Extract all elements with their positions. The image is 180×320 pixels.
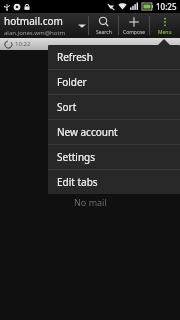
staticText: Refresh	[57, 50, 93, 64]
staticText: Search	[96, 29, 112, 36]
staticText: alan.jones.wm@hotm	[4, 29, 66, 37]
button[interactable]: Sort	[48, 95, 180, 119]
staticText: 10:22	[15, 40, 31, 48]
staticText: New account	[57, 125, 118, 139]
staticText: No mail	[74, 196, 107, 208]
staticText: Folder	[57, 75, 87, 89]
button[interactable]: New account	[48, 120, 180, 144]
button[interactable]: Search	[89, 13, 118, 38]
staticText: Edit tabs	[57, 175, 98, 189]
staticText: Sort	[57, 100, 77, 114]
staticText: hotmail.com	[4, 14, 63, 28]
staticText: Menu	[158, 29, 172, 36]
button[interactable]: Menu	[150, 13, 180, 38]
button[interactable]: Compose	[119, 13, 149, 38]
staticText: Settings	[57, 150, 96, 164]
staticText: 10:25	[156, 1, 177, 12]
button[interactable]: Settings	[48, 145, 180, 169]
button[interactable]: hotmail.com	[0, 13, 88, 38]
button[interactable]: Folder	[48, 70, 180, 94]
button[interactable]: Edit tabs	[48, 170, 180, 194]
staticText: Compose	[123, 29, 146, 36]
button[interactable]: Refresh	[48, 45, 180, 69]
